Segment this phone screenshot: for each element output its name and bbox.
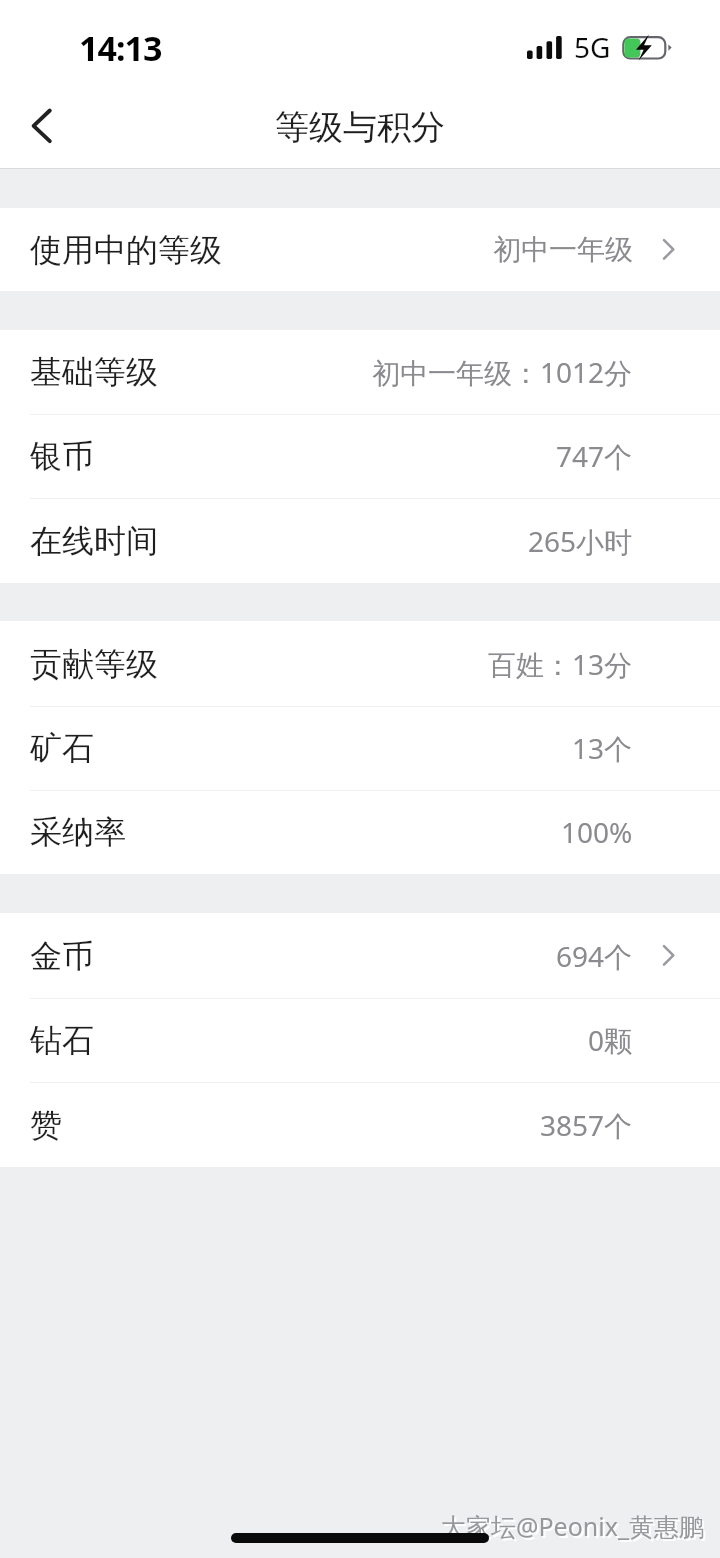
staticText: 金币: [30, 936, 94, 976]
staticText: 矿石: [30, 728, 94, 768]
button[interactable]: 使用中的等级: [0, 208, 720, 291]
button[interactable]: 采纳率: [0, 790, 720, 874]
staticText: 大家坛@Peonix_黄惠鹏: [441, 1509, 705, 1543]
button[interactable]: 基础等级: [0, 330, 720, 414]
staticText: 等级与积分: [275, 106, 445, 149]
staticText: 使用中的等级: [30, 230, 222, 270]
staticText: 13个: [572, 729, 633, 767]
staticText: 0颗: [588, 1021, 633, 1059]
staticText: 银币: [30, 436, 94, 476]
staticText: 14:13: [79, 25, 162, 71]
button[interactable]: 钻石: [0, 998, 720, 1082]
button[interactable]: 银币: [0, 414, 720, 498]
button[interactable]: 贡献等级: [0, 621, 720, 706]
staticText: 694个: [556, 937, 633, 975]
button[interactable]: 矿石: [0, 706, 720, 790]
button[interactable]: 金币: [0, 913, 720, 998]
staticText: 采纳率: [30, 812, 126, 852]
staticText: 赞: [30, 1105, 62, 1145]
staticText: 747个: [556, 437, 633, 475]
staticText: 在线时间: [30, 521, 158, 561]
staticText: 初中一年级: [493, 232, 633, 267]
staticText: 5G: [574, 28, 611, 66]
staticText: 钻石: [30, 1020, 94, 1060]
button[interactable]: 赞: [0, 1082, 720, 1167]
staticText: 大家坛@Peonix_黄惠鹏: [443, 1511, 707, 1545]
staticText: 基础等级: [30, 352, 158, 392]
staticText: 初中一年级：1012分: [372, 353, 633, 391]
staticText: 265小时: [528, 522, 633, 560]
staticText: 贡献等级: [30, 644, 158, 684]
button[interactable]: Back: [0, 90, 84, 168]
staticText: 3857个: [540, 1106, 633, 1144]
button[interactable]: 在线时间: [0, 498, 720, 583]
staticText: 百姓：13分: [488, 645, 633, 683]
staticText: 100%: [561, 813, 633, 851]
